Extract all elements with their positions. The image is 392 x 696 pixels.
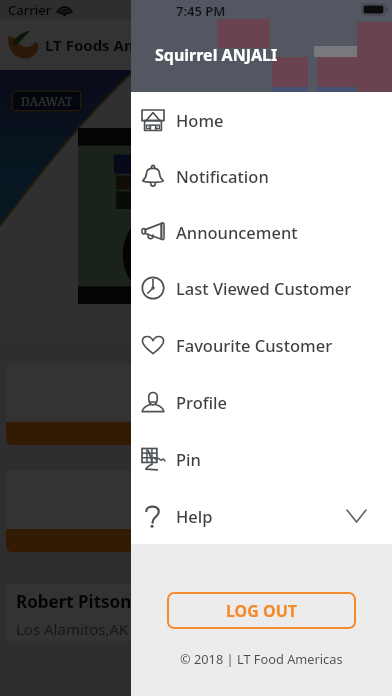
- button[interactable]: New Order: [6, 363, 386, 445]
- staticText: Favourite Customer: [176, 334, 333, 356]
- staticText: Robert Pitson: [16, 590, 132, 613]
- button[interactable]: Announcement: [131, 204, 392, 260]
- staticText: Pin: [176, 448, 201, 470]
- button[interactable]: Purchase History: [6, 470, 386, 552]
- staticText: Help: [176, 505, 213, 527]
- staticText: Announcement: [176, 221, 298, 243]
- button[interactable]: Notification: [131, 148, 392, 204]
- staticText: Carrier: [8, 1, 52, 19]
- staticText: Squirrel ANJALI: [155, 44, 278, 66]
- button[interactable]: Profile: [131, 373, 392, 430]
- button[interactable]: Pin: [131, 430, 392, 487]
- staticText: Home: [176, 109, 224, 131]
- button[interactable]: Help: [131, 487, 392, 544]
- staticText: DAAWAT: [21, 93, 73, 109]
- staticText: Los Alamitos,AK 10001: [16, 619, 176, 639]
- staticText: LOG OUT: [226, 600, 298, 622]
- button[interactable]: Favourite Customer: [131, 316, 392, 373]
- staticText: Notification: [176, 165, 269, 187]
- staticText: 7:45 PM: [176, 2, 226, 20]
- staticText: Purchase History: [136, 531, 256, 551]
- staticText: Profile: [176, 391, 228, 413]
- other: Battery full: [362, 4, 389, 15]
- staticText: Last Viewed Customer: [176, 277, 352, 299]
- staticText: LT Foods Americas: [45, 35, 183, 55]
- staticText: © 2018 | LT Food Americas: [180, 650, 343, 667]
- other: Expand help: [347, 510, 366, 522]
- button[interactable]: Log out: [167, 592, 356, 629]
- button[interactable]: Last Viewed Customer: [131, 260, 392, 316]
- button[interactable]: Home: [131, 92, 392, 148]
